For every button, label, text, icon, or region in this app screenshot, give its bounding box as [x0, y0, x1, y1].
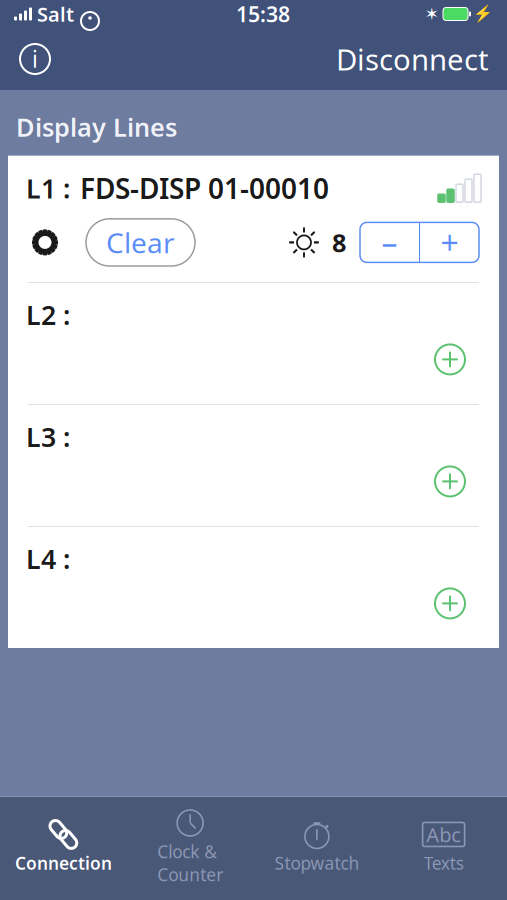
staticText: –	[381, 221, 397, 264]
staticText: Salt	[37, 1, 74, 27]
staticText: Stopwatch	[274, 851, 359, 874]
button[interactable]: Info	[0, 34, 52, 84]
staticText: ⚡	[473, 5, 493, 23]
staticText: Connection	[15, 851, 112, 874]
staticText: Abc	[426, 821, 461, 848]
staticText: Texts	[424, 851, 464, 874]
staticText: L1 :	[26, 170, 70, 206]
button[interactable]: Connection	[0, 814, 127, 880]
staticText: L2 :	[26, 297, 70, 332]
staticText: ✶	[424, 4, 439, 24]
staticText: L4 :	[26, 541, 70, 576]
button[interactable]: Decrease brightness	[360, 222, 419, 262]
staticText: Disconnect	[336, 39, 489, 78]
button[interactable]: Clock & Counter	[127, 803, 254, 892]
button[interactable]: Add line L4 :	[427, 582, 473, 624]
staticText: 15:38	[236, 0, 290, 28]
button[interactable]: Clear	[86, 219, 195, 266]
button[interactable]: Increase brightness	[420, 222, 479, 262]
staticText: Display Lines	[16, 110, 177, 144]
button[interactable]: Add line L2 :	[427, 338, 473, 380]
button[interactable]: Settings	[26, 223, 64, 261]
staticText: Clock & Counter	[157, 840, 223, 886]
button[interactable]: Disconnect	[336, 31, 507, 86]
button[interactable]: Add line L3 :	[427, 460, 473, 502]
button[interactable]: Abc	[380, 814, 507, 880]
staticText: 8	[332, 226, 346, 259]
staticText: i	[32, 44, 38, 74]
button[interactable]: Stopwatch	[253, 814, 380, 880]
staticText: FDS-DISP 01-00010	[80, 170, 329, 207]
staticText: L3 :	[26, 419, 70, 454]
staticText: Clear	[106, 224, 175, 261]
staticText: +	[440, 221, 458, 264]
